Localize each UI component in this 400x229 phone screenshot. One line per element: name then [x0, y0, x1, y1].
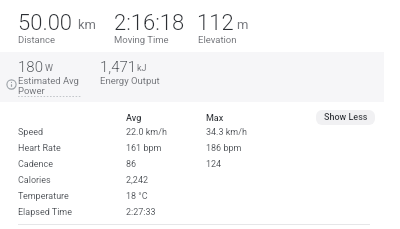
staticText: 22.0 km/h: [126, 127, 167, 138]
staticText: 124: [206, 159, 222, 170]
staticText: Energy Output: [100, 75, 190, 86]
staticText: Cadence: [18, 159, 54, 170]
staticText: Temperature: [18, 191, 69, 202]
button[interactable]: Speed: [0, 126, 400, 142]
staticText: Show Less: [324, 112, 368, 123]
button[interactable]: Cadence: [0, 158, 400, 174]
staticText: Speed: [18, 127, 44, 138]
button[interactable]: Heart Rate: [0, 142, 400, 158]
staticText: Elapsed Time: [18, 207, 73, 218]
staticText: 2,242: [126, 175, 149, 186]
staticText: Moving Time: [114, 34, 204, 45]
staticText: kJ: [137, 63, 147, 74]
staticText: 161 bpm: [126, 143, 162, 154]
staticText: 2:16:18: [114, 10, 185, 36]
staticText: Max: [206, 113, 224, 124]
staticText: 180: [18, 58, 43, 76]
button[interactable]: Elapsed Time: [0, 206, 400, 222]
staticText: 2:27:33: [126, 207, 156, 218]
button[interactable]: About estimated average power: [6, 79, 17, 90]
staticText: 18 °C: [126, 191, 148, 202]
staticText: 34.3 km/h: [206, 127, 247, 138]
staticText: Avg: [126, 113, 142, 124]
staticText: Estimated Avg Power: [18, 75, 81, 96]
button[interactable]: Show Less: [316, 110, 375, 125]
staticText: W: [45, 63, 53, 74]
staticText: 1,471: [100, 58, 137, 76]
button[interactable]: Calories: [0, 174, 400, 190]
staticText: 50.00: [18, 10, 73, 36]
staticText: Calories: [18, 175, 51, 186]
staticText: m: [237, 17, 249, 32]
staticText: Heart Rate: [18, 143, 61, 154]
staticText: km: [78, 17, 96, 32]
staticText: 186 bpm: [206, 143, 242, 154]
staticText: Elevation: [198, 34, 288, 45]
staticText: Distance: [18, 34, 108, 45]
staticText: 86: [126, 159, 137, 170]
staticText: 112: [197, 10, 234, 36]
button[interactable]: Temperature: [0, 190, 400, 206]
